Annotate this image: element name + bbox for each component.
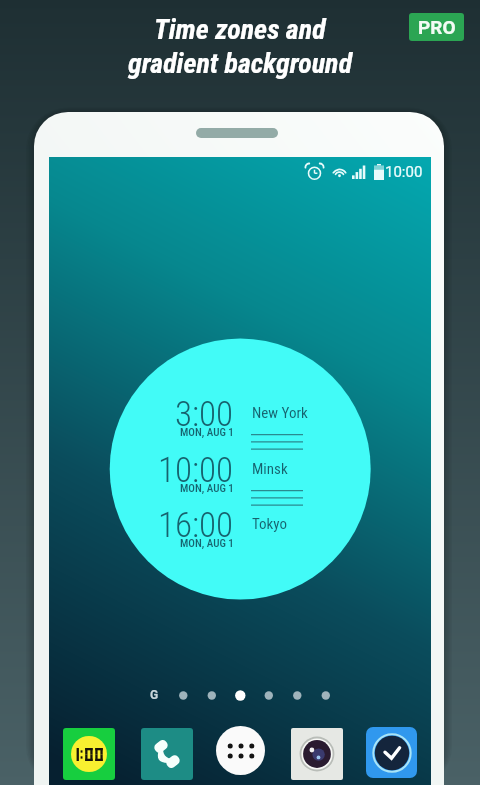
staticText: 10:00 <box>158 450 234 491</box>
button[interactable]: All apps <box>216 726 265 775</box>
staticText: 10:00 <box>385 163 423 181</box>
button[interactable]: Tokyo <box>252 513 288 535</box>
staticText: MON, AUG 1 <box>180 426 234 439</box>
staticText: gradient background <box>128 47 352 80</box>
staticText: MON, AUG 1 <box>180 537 234 550</box>
button[interactable]: Phone <box>141 728 193 780</box>
button[interactable]: 3:00 <box>94 394 234 442</box>
staticText: 3:00 <box>175 394 234 435</box>
staticText: New York <box>252 404 308 422</box>
staticText: G <box>150 688 159 702</box>
staticText: Time zones and <box>154 13 326 46</box>
staticText: Minsk <box>252 460 288 478</box>
staticText: Tokyo <box>252 515 288 533</box>
button[interactable]: PRO <box>409 13 464 41</box>
button[interactable]: 10:00 <box>94 450 234 498</box>
button[interactable]: Minsk <box>252 458 288 480</box>
button[interactable]: Tasks <box>366 727 417 778</box>
staticText: PRO <box>418 16 456 38</box>
button[interactable]: Clock <box>63 728 115 780</box>
button[interactable]: 16:00 <box>94 505 234 553</box>
button[interactable]: Camera <box>291 728 343 780</box>
staticText: MON, AUG 1 <box>180 482 234 495</box>
button[interactable]: New York <box>252 402 308 424</box>
staticText: 16:00 <box>158 505 234 546</box>
